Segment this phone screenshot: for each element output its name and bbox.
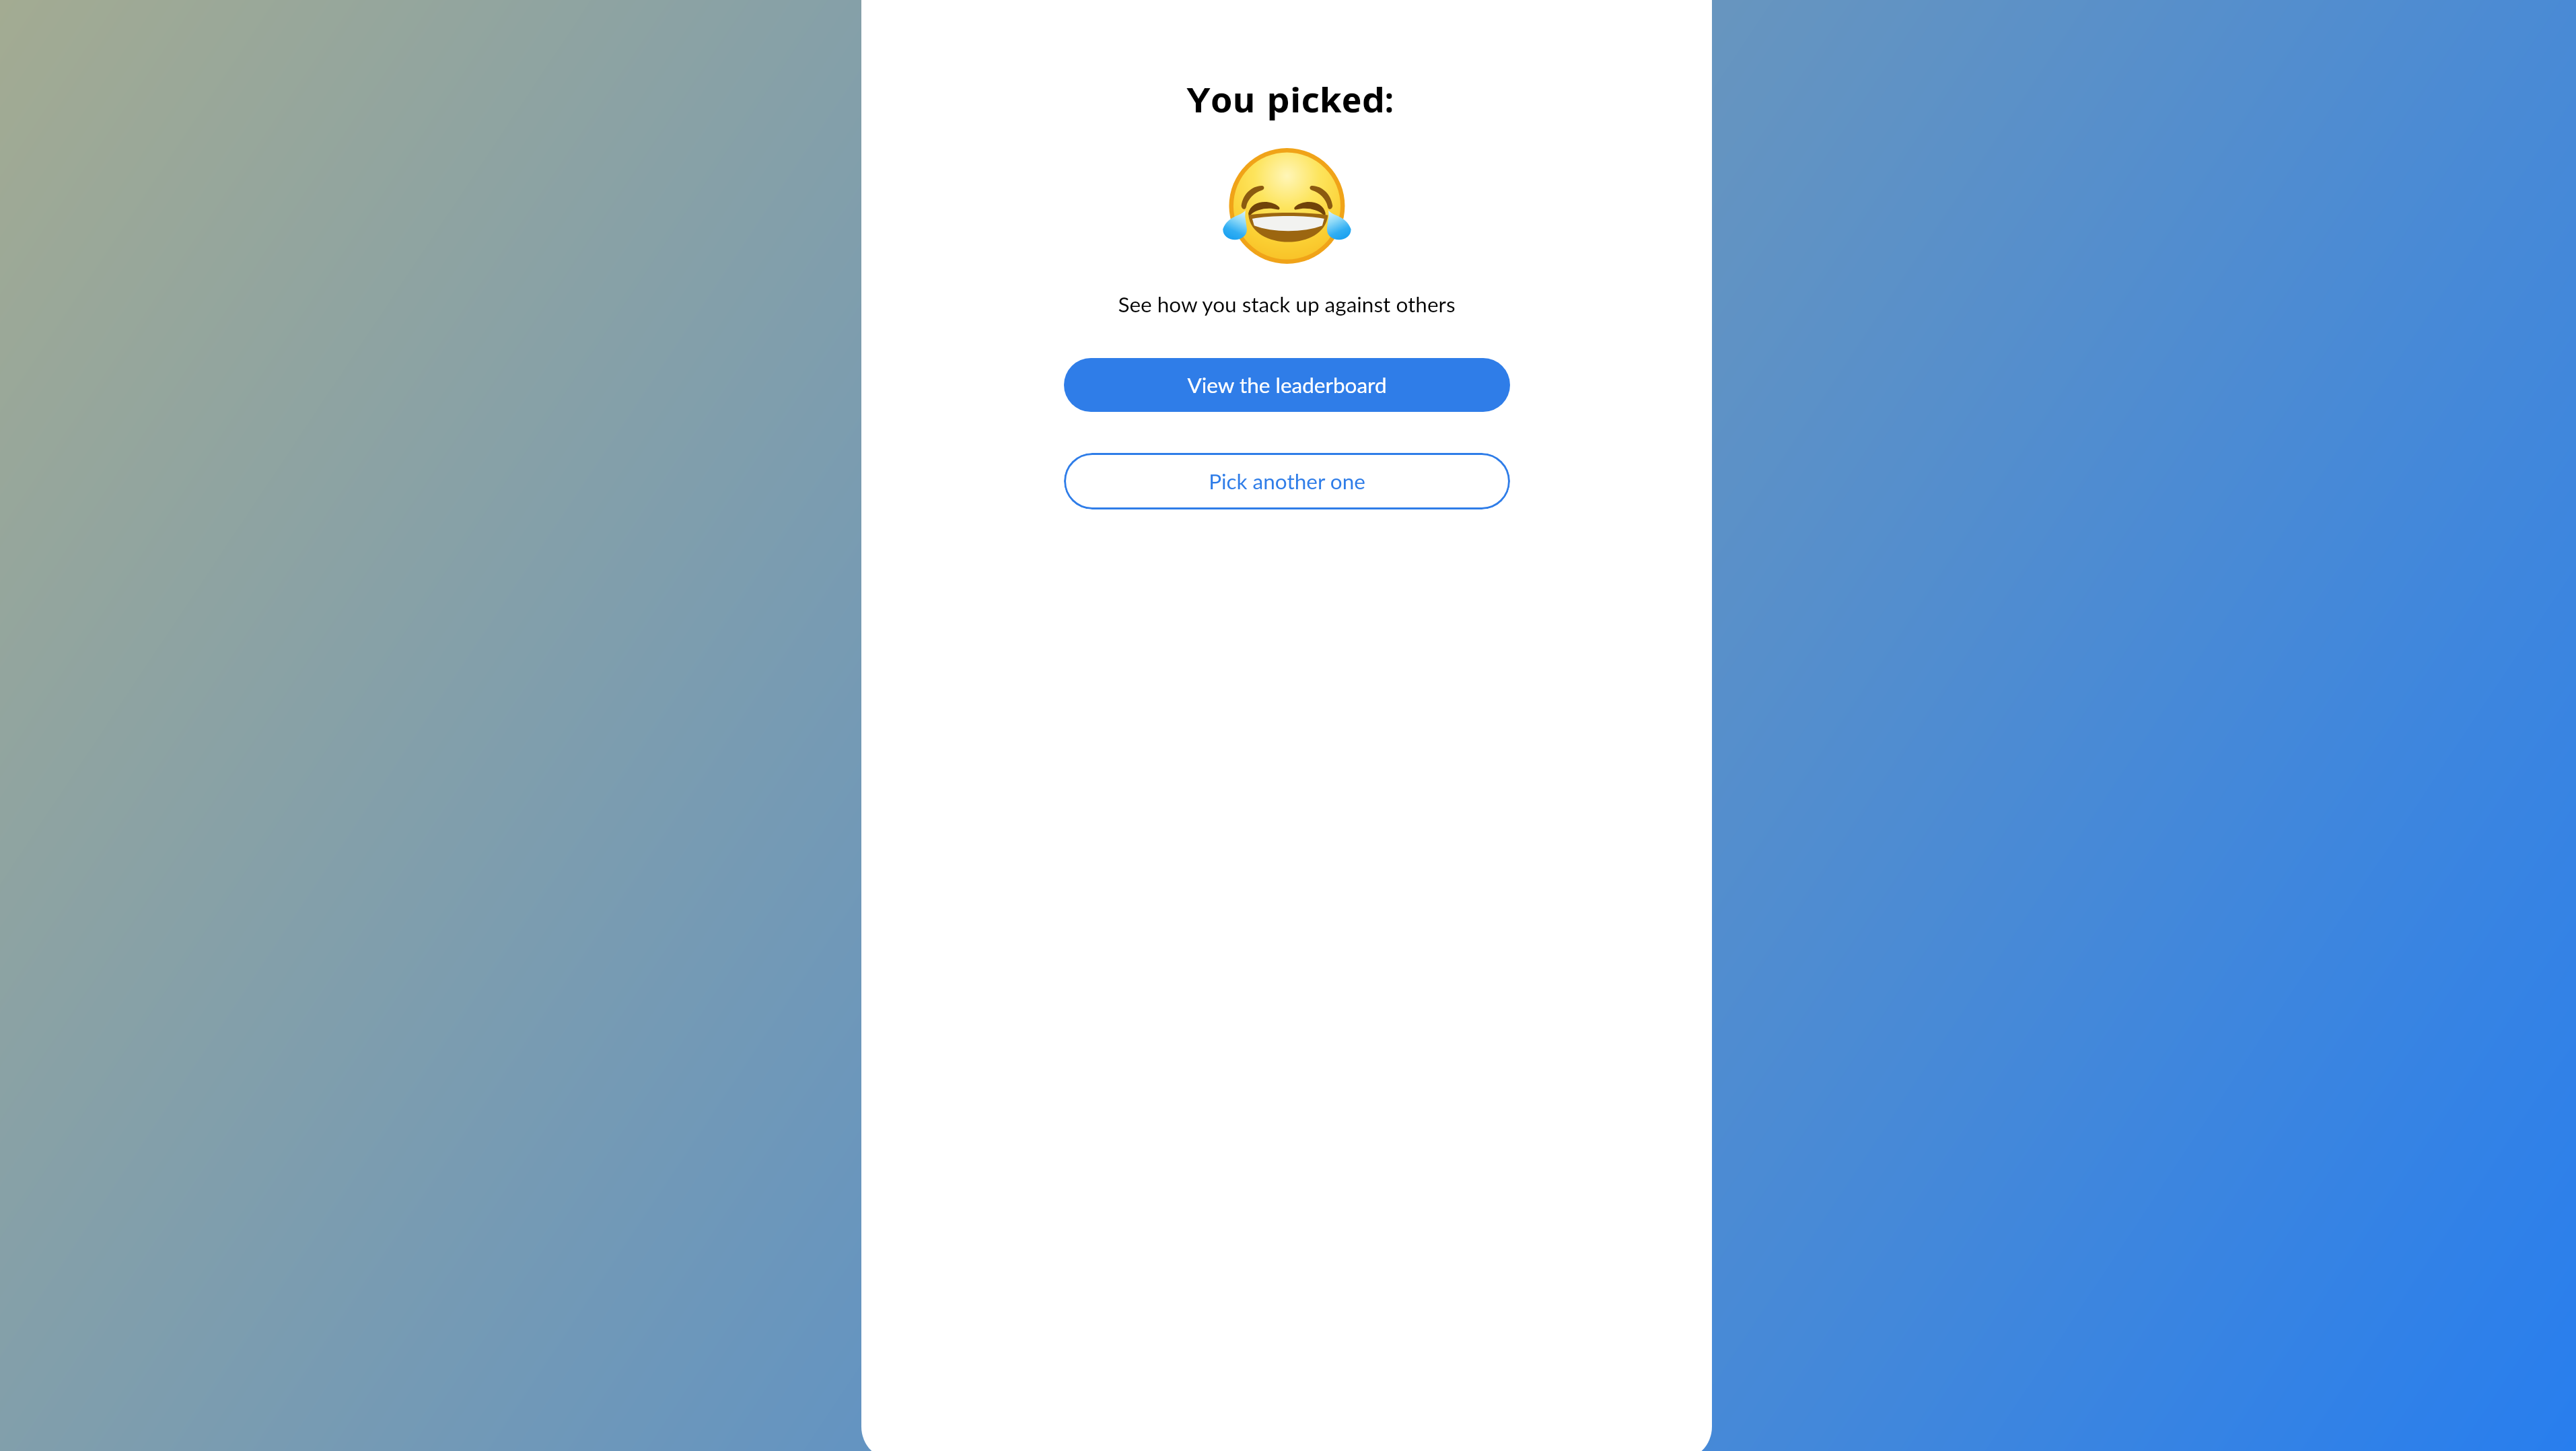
staticText: See how you stack up against others	[861, 291, 1712, 317]
staticText: View the leaderboard	[1187, 372, 1387, 398]
button[interactable]: Pick another one	[1064, 453, 1510, 509]
other: Face with tears of joy	[1223, 147, 1351, 265]
button[interactable]: View the leaderboard	[1064, 358, 1510, 412]
staticText: You picked:	[865, 79, 1715, 120]
staticText: Pick another one	[1209, 468, 1365, 494]
